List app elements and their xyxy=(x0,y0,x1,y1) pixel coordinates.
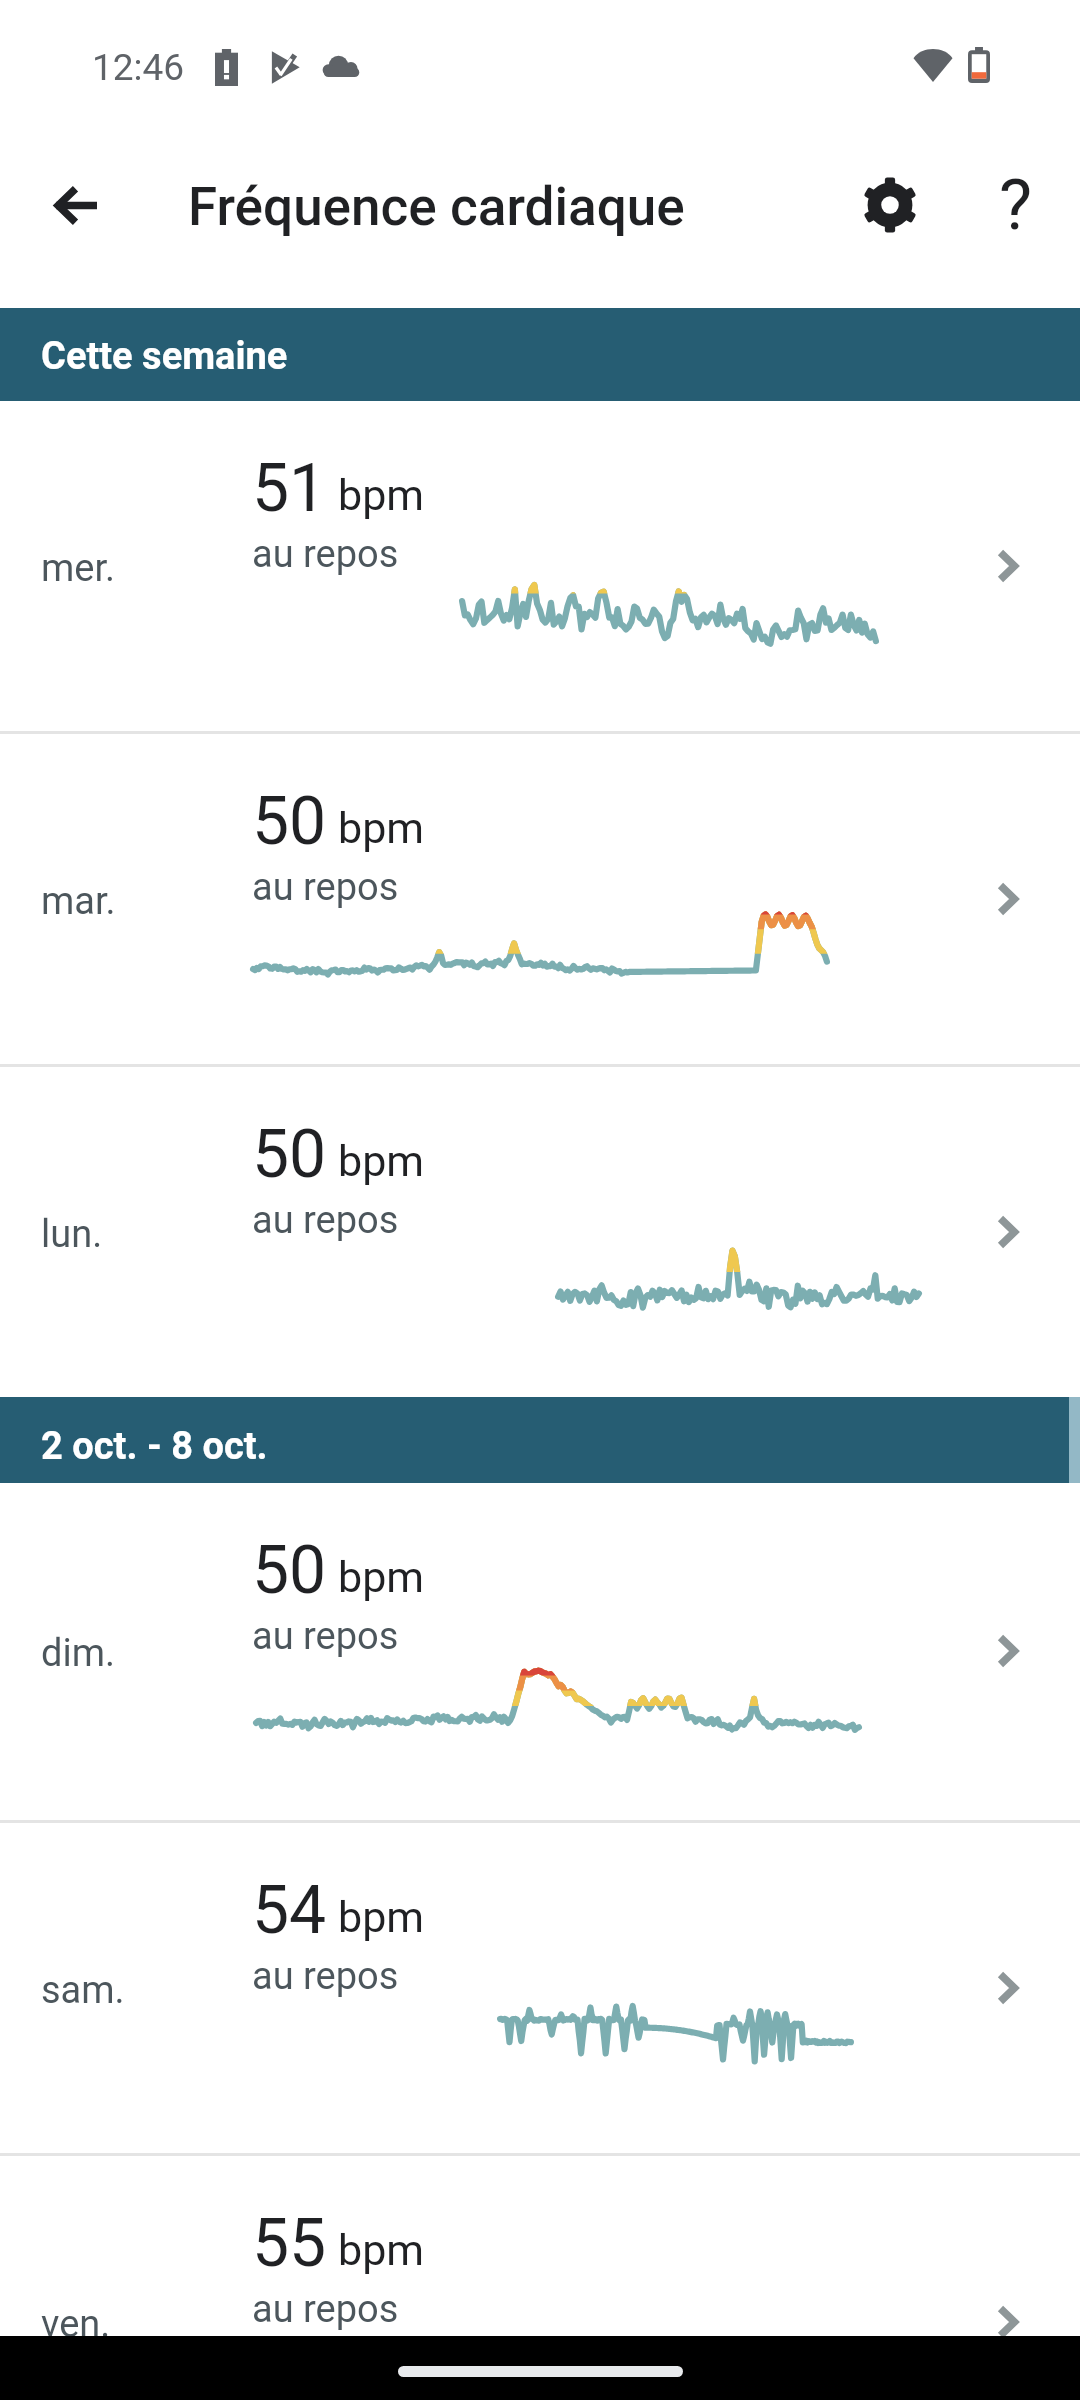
staticText: 51 xyxy=(252,450,327,527)
staticText: 50 xyxy=(252,1532,327,1609)
staticText: ven. xyxy=(41,2302,111,2347)
staticText: Fréquence cardiaque xyxy=(188,176,685,238)
staticText: au repos xyxy=(252,1614,399,1659)
staticText: au repos xyxy=(252,1198,399,1243)
staticText: 50 xyxy=(252,783,327,860)
staticText: bpm xyxy=(338,1136,424,1186)
staticText: 54 xyxy=(252,1872,327,1949)
button[interactable]: Cette semaine xyxy=(0,308,1080,401)
staticText: au repos xyxy=(252,2287,399,2332)
other: Voir les details xyxy=(997,1971,1018,2005)
staticText: bpm xyxy=(338,803,424,853)
staticText: bpm xyxy=(338,2225,424,2275)
button[interactable]: mer. xyxy=(0,401,1080,731)
staticText: dim. xyxy=(41,1631,116,1676)
staticText: au repos xyxy=(252,532,399,577)
button[interactable]: dim. xyxy=(0,1483,1080,1820)
staticText: 55 xyxy=(252,2205,327,2282)
button[interactable]: lun. xyxy=(0,1067,1080,1397)
staticText: bpm xyxy=(338,470,424,520)
staticText: bpm xyxy=(338,1892,424,1942)
staticText: mer. xyxy=(41,546,116,591)
other: Voir les details xyxy=(997,1215,1018,1249)
other: Voir les details xyxy=(997,549,1018,583)
button[interactable]: ven. xyxy=(0,2156,1080,2400)
staticText: au repos xyxy=(252,1954,399,1999)
staticText: bpm xyxy=(338,1552,424,1602)
other: Voir les details xyxy=(997,2305,1018,2339)
button[interactable]: 2 oct. - 8 oct. xyxy=(0,1397,1080,1483)
staticText: 12:46 xyxy=(92,46,185,89)
staticText: sam. xyxy=(41,1968,125,2013)
staticText: 2 oct. - 8 oct. xyxy=(41,1424,268,1469)
staticText: au repos xyxy=(252,865,399,910)
button[interactable]: Aide xyxy=(971,160,1061,250)
staticText: ? xyxy=(999,164,1033,246)
other: Voir les details xyxy=(997,882,1018,916)
staticText: mar. xyxy=(41,879,116,924)
button[interactable]: Retour xyxy=(30,160,120,250)
button[interactable]: mar. xyxy=(0,734,1080,1064)
staticText: 50 xyxy=(252,1116,327,1193)
staticText: lun. xyxy=(41,1212,103,1257)
button[interactable]: sam. xyxy=(0,1823,1080,2153)
other: Voir les details xyxy=(997,1634,1018,1668)
staticText: Cette semaine xyxy=(41,334,288,379)
button[interactable]: Paramètres xyxy=(845,160,935,250)
